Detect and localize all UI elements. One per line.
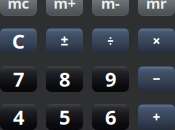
staticText: mr [146,0,167,13]
staticText: 7 [13,66,24,92]
button[interactable]: Minus [138,66,175,92]
button[interactable]: Divide [92,28,129,54]
staticText: C [12,28,25,54]
staticText: 9 [105,66,116,92]
staticText: 5 [59,104,70,130]
staticText: 8 [59,66,70,92]
button[interactable]: mr [138,0,175,16]
button[interactable]: m+ [46,0,83,16]
button[interactable]: Clear [0,28,37,54]
button[interactable]: 4 [0,104,37,130]
staticText: m- [101,0,120,13]
staticText: m+ [53,0,75,13]
staticText: mc [7,0,29,13]
staticText: 6 [105,104,116,130]
button[interactable]: 5 [46,104,83,130]
button[interactable]: Plus [138,104,175,130]
button[interactable]: mc [0,0,37,16]
staticText: 4 [13,104,24,130]
button[interactable]: 8 [46,66,83,92]
button[interactable]: 6 [92,104,129,130]
button[interactable]: Plus minus [46,28,83,54]
button[interactable]: Multiply [138,28,175,54]
button[interactable]: m- [92,0,129,16]
button[interactable]: 9 [92,66,129,92]
button[interactable]: 7 [0,66,37,92]
